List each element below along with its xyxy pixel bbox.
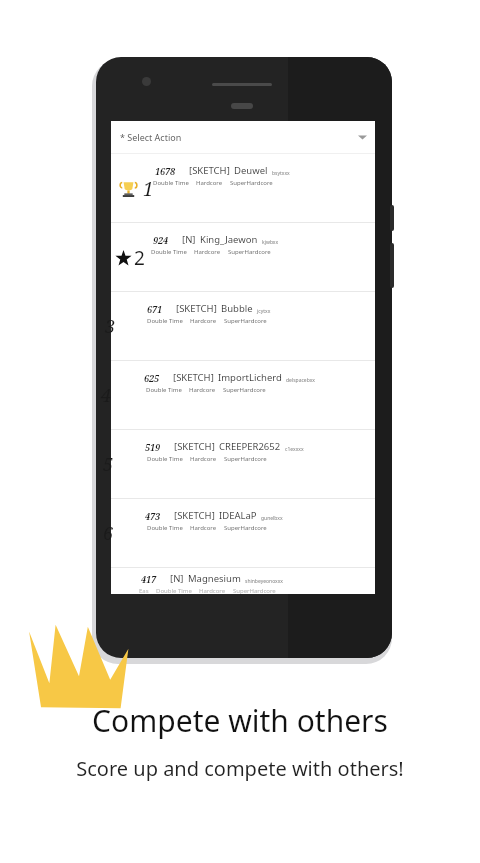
staticText: Score up and compete with others! [76, 755, 404, 782]
staticText: shinbeyeonoxxx [245, 578, 284, 585]
staticText: Double Time [153, 179, 189, 187]
other: First place trophy [119, 180, 138, 198]
staticText: [N] [182, 233, 196, 246]
other: Second place star [115, 250, 132, 267]
staticText: ImportLicherd [218, 371, 282, 384]
staticText: [N] [170, 572, 184, 585]
button[interactable]: First place trophy [111, 154, 375, 222]
staticText: [SKETCH] [173, 371, 214, 384]
staticText: Bubble [221, 302, 253, 315]
staticText: IDEALaP [219, 509, 257, 522]
staticText: Hardcore [190, 524, 217, 532]
staticText: 1678 [155, 165, 176, 177]
staticText: Magnesium [188, 572, 241, 585]
staticText: Double Time [147, 317, 183, 325]
staticText: Hardcore [190, 317, 217, 325]
button[interactable]: 417 [111, 568, 375, 594]
staticText: Double Time [147, 524, 183, 532]
staticText: Eas [139, 587, 149, 595]
staticText: [SKETCH] [176, 302, 217, 315]
button[interactable]: 5 [111, 430, 375, 498]
staticText: Double Time [156, 587, 192, 595]
staticText: SuperHardcore [228, 248, 271, 256]
staticText: Compete with others [92, 700, 388, 741]
button[interactable]: Second place star [111, 223, 375, 291]
staticText: SuperHardcore [224, 524, 267, 532]
staticText: Deuwel [234, 164, 268, 177]
staticText: 2 [134, 245, 145, 271]
staticText: 924 [153, 234, 169, 246]
staticText: Hardcore [199, 587, 226, 595]
staticText: SuperHardcore [230, 179, 273, 187]
staticText: SuperHardcore [224, 455, 267, 463]
staticText: 1 [143, 176, 154, 202]
staticText: Hardcore [189, 386, 216, 394]
staticText: [SKETCH] [189, 164, 230, 177]
button[interactable]: * Select Action [111, 121, 375, 153]
staticText: Double Time [151, 248, 187, 256]
staticText: 625 [144, 372, 160, 384]
staticText: SuperHardcore [223, 386, 266, 394]
staticText: 473 [145, 510, 161, 522]
staticText: SuperHardcore [233, 587, 276, 595]
staticText: jcytxx [257, 308, 271, 315]
staticText: 3 [105, 314, 116, 339]
staticText: 6 [103, 521, 114, 546]
staticText: delspacebxx [286, 377, 315, 384]
staticText: King_Jaewon [200, 233, 258, 246]
staticText: 4 [101, 383, 112, 408]
staticText: [SKETCH] [174, 509, 215, 522]
other: Open dropdown [358, 134, 367, 140]
staticText: c1exxxx [285, 446, 304, 453]
button[interactable]: 4 [111, 361, 375, 429]
staticText: Hardcore [190, 455, 217, 463]
staticText: Double Time [147, 455, 183, 463]
staticText: CREEPER2652 [219, 440, 281, 453]
button[interactable]: 6 [111, 499, 375, 567]
staticText: Hardcore [196, 179, 223, 187]
staticText: Hardcore [194, 248, 221, 256]
staticText: * Select Action [120, 131, 182, 143]
staticText: 671 [147, 303, 163, 315]
staticText: 5 [103, 452, 114, 477]
staticText: Double Time [146, 386, 182, 394]
staticText: 519 [145, 441, 161, 453]
staticText: SuperHardcore [224, 317, 267, 325]
staticText: bsytxxx [272, 170, 290, 177]
staticText: kjwbxx [262, 239, 279, 246]
staticText: [SKETCH] [174, 440, 215, 453]
button[interactable]: 3 [111, 292, 375, 360]
staticText: gunelbxx [261, 515, 283, 522]
staticText: 417 [141, 573, 157, 585]
